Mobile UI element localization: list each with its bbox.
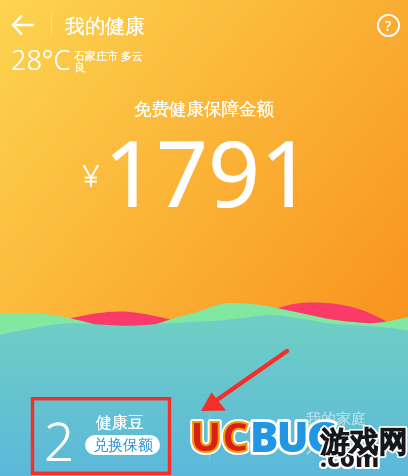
staticText: 28°C: [11, 41, 71, 78]
button[interactable]: Back: [7, 9, 39, 41]
button[interactable]: 我的家庭: [296, 405, 372, 457]
staticText: 我的家庭: [306, 410, 366, 429]
staticText: ¥: [82, 154, 100, 196]
staticText: 2: [44, 404, 75, 472]
staticText: 我的健康: [65, 14, 145, 39]
staticText: 1791: [104, 110, 313, 234]
staticText: 免费健康保障金额: [0, 98, 408, 120]
staticText: 人保健康: [306, 438, 366, 457]
staticText: ?: [385, 16, 392, 35]
button[interactable]: Help: [373, 10, 403, 40]
staticText: 石家庄市 多云 良: [74, 48, 143, 74]
staticText: 兑换保额: [93, 436, 153, 455]
button[interactable]: 2: [34, 405, 170, 473]
staticText: 健康豆: [96, 413, 144, 433]
